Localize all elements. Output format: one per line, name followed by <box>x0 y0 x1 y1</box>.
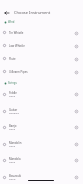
button[interactable]: Fiddle <box>0 86 83 102</box>
button[interactable]: Instrument settings <box>71 54 81 64</box>
staticText: Mandolin <box>9 141 22 145</box>
button[interactable]: Flute <box>0 52 83 65</box>
staticText: Tin Whistle <box>9 31 73 35</box>
staticText: Mandola <box>9 157 21 161</box>
staticText: Wind <box>8 20 15 24</box>
staticText: GDAE <box>9 95 16 98</box>
button[interactable]: Mandola <box>0 152 83 168</box>
button[interactable]: Instrument settings <box>71 106 81 116</box>
button[interactable]: Back <box>1 7 12 18</box>
button[interactable]: Instrument settings <box>71 89 81 99</box>
button[interactable]: Guitar <box>0 103 83 119</box>
staticText: GDAE <box>9 145 16 148</box>
staticText: GDAE <box>9 128 16 131</box>
button[interactable]: Instrument settings <box>71 155 81 165</box>
button[interactable]: Low Whistle <box>0 39 83 52</box>
button[interactable]: Uilleann Pipes <box>0 65 83 78</box>
button[interactable]: Mandolin <box>0 136 83 152</box>
button[interactable]: Instrument settings <box>71 67 81 77</box>
staticText: Flute <box>9 57 73 61</box>
button[interactable]: Banjo <box>0 119 83 135</box>
staticText: Low Whistle <box>9 44 73 48</box>
staticText: Uilleann Pipes <box>9 70 73 74</box>
button[interactable]: Instrument settings <box>71 139 81 149</box>
staticText: Fiddle <box>9 91 17 95</box>
button[interactable]: Instrument settings <box>71 28 81 38</box>
staticText: GDAE <box>9 161 16 164</box>
staticText: Bouzouki <box>9 174 22 178</box>
button[interactable]: Bouzouki <box>0 169 83 184</box>
button[interactable]: Instrument settings <box>71 172 81 182</box>
staticText: GDAD <box>9 178 16 181</box>
staticText: Choose Instrument <box>14 10 51 15</box>
button[interactable]: Instrument settings <box>71 122 81 132</box>
staticText: Guitar <box>9 108 18 112</box>
staticText: Standard <box>9 112 19 115</box>
staticText: Banjo <box>9 124 17 128</box>
button[interactable]: Instrument settings <box>71 41 81 51</box>
button[interactable]: Tin Whistle <box>0 26 83 39</box>
staticText: Strings <box>8 81 17 85</box>
